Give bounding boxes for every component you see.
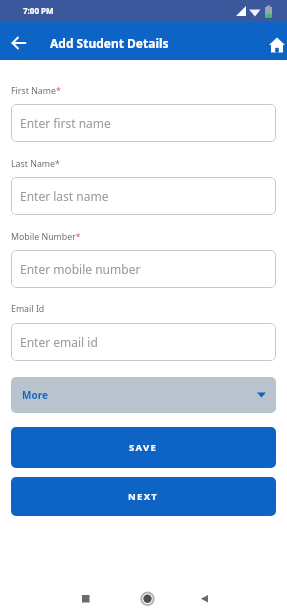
- button[interactable]: Enter mobile number: [11, 250, 276, 288]
- staticText: Email Id: [11, 303, 45, 315]
- staticText: Enter last name: [20, 188, 109, 204]
- staticText: Enter email id: [20, 334, 98, 350]
- button[interactable]: [266, 36, 287, 56]
- button[interactable]: Enter first name: [11, 104, 276, 142]
- button[interactable]: [197, 590, 213, 606]
- button[interactable]: [139, 590, 155, 606]
- staticText: First Name*: [11, 85, 61, 97]
- button[interactable]: Enter last name: [11, 177, 276, 215]
- button[interactable]: NEXT: [11, 477, 276, 516]
- button[interactable]: [6, 30, 32, 54]
- staticText: NEXT: [128, 490, 159, 503]
- staticText: More: [22, 388, 48, 402]
- staticText: SAVE: [129, 441, 158, 454]
- staticText: Mobile Number*: [11, 231, 81, 243]
- button[interactable]: More: [11, 377, 276, 413]
- button[interactable]: [78, 590, 94, 606]
- staticText: 7:00 PM: [23, 5, 54, 16]
- button[interactable]: Enter email id: [11, 323, 276, 361]
- staticText: Enter mobile number: [20, 261, 141, 277]
- staticText: Last Name*: [11, 158, 60, 170]
- staticText: Enter first name: [20, 115, 111, 131]
- button[interactable]: SAVE: [11, 427, 276, 468]
- staticText: Add Student Details: [50, 35, 169, 51]
